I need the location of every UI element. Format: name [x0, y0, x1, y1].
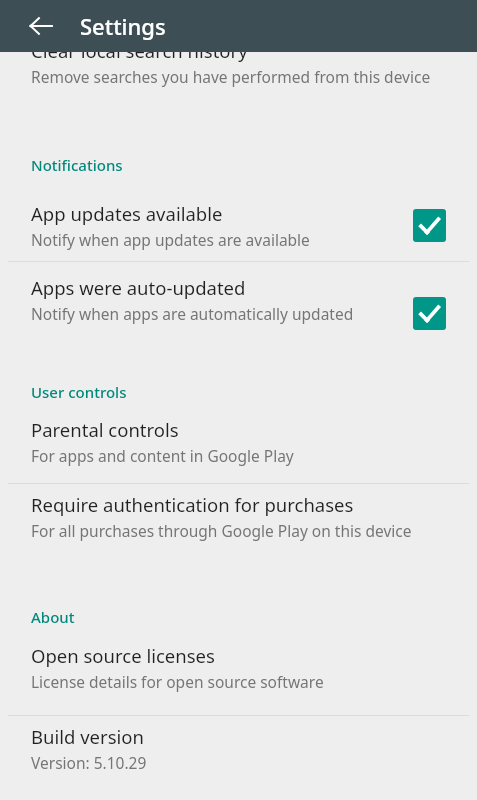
staticText: User controls — [31, 382, 127, 402]
staticText: Settings — [80, 11, 166, 41]
staticText: For all purchases through Google Play on… — [31, 520, 412, 541]
staticText: Notify when apps are automatically updat… — [31, 303, 354, 324]
button[interactable]: Parental controls — [0, 417, 477, 481]
staticText: Parental controls — [31, 417, 179, 442]
staticText: App updates available — [31, 201, 223, 226]
staticText: License details for open source software — [31, 671, 324, 692]
staticText: About — [31, 607, 75, 627]
staticText: For apps and content in Google Play — [31, 445, 294, 466]
staticText: Require authentication for purchases — [31, 492, 354, 517]
staticText: Build version — [31, 724, 144, 749]
button[interactable]: Clear local search history — [0, 38, 477, 136]
staticText: Notifications — [31, 155, 123, 175]
button[interactable]: Open source licenses — [0, 643, 477, 707]
button[interactable]: Require authentication for purchases — [0, 492, 477, 587]
staticText: Remove searches you have performed from … — [31, 66, 431, 87]
button[interactable]: Back — [18, 3, 64, 49]
button[interactable]: Build version — [0, 724, 477, 788]
staticText: Version: 5.10.29 — [31, 752, 147, 773]
staticText: Notify when app updates are available — [31, 229, 310, 250]
staticText: Apps were auto-updated — [31, 275, 246, 300]
button[interactable]: App updates available — [0, 190, 477, 260]
staticText: Clear local search history — [31, 38, 248, 63]
staticText: Open source licenses — [31, 643, 215, 668]
button[interactable]: Apps were auto-updated — [0, 268, 477, 363]
